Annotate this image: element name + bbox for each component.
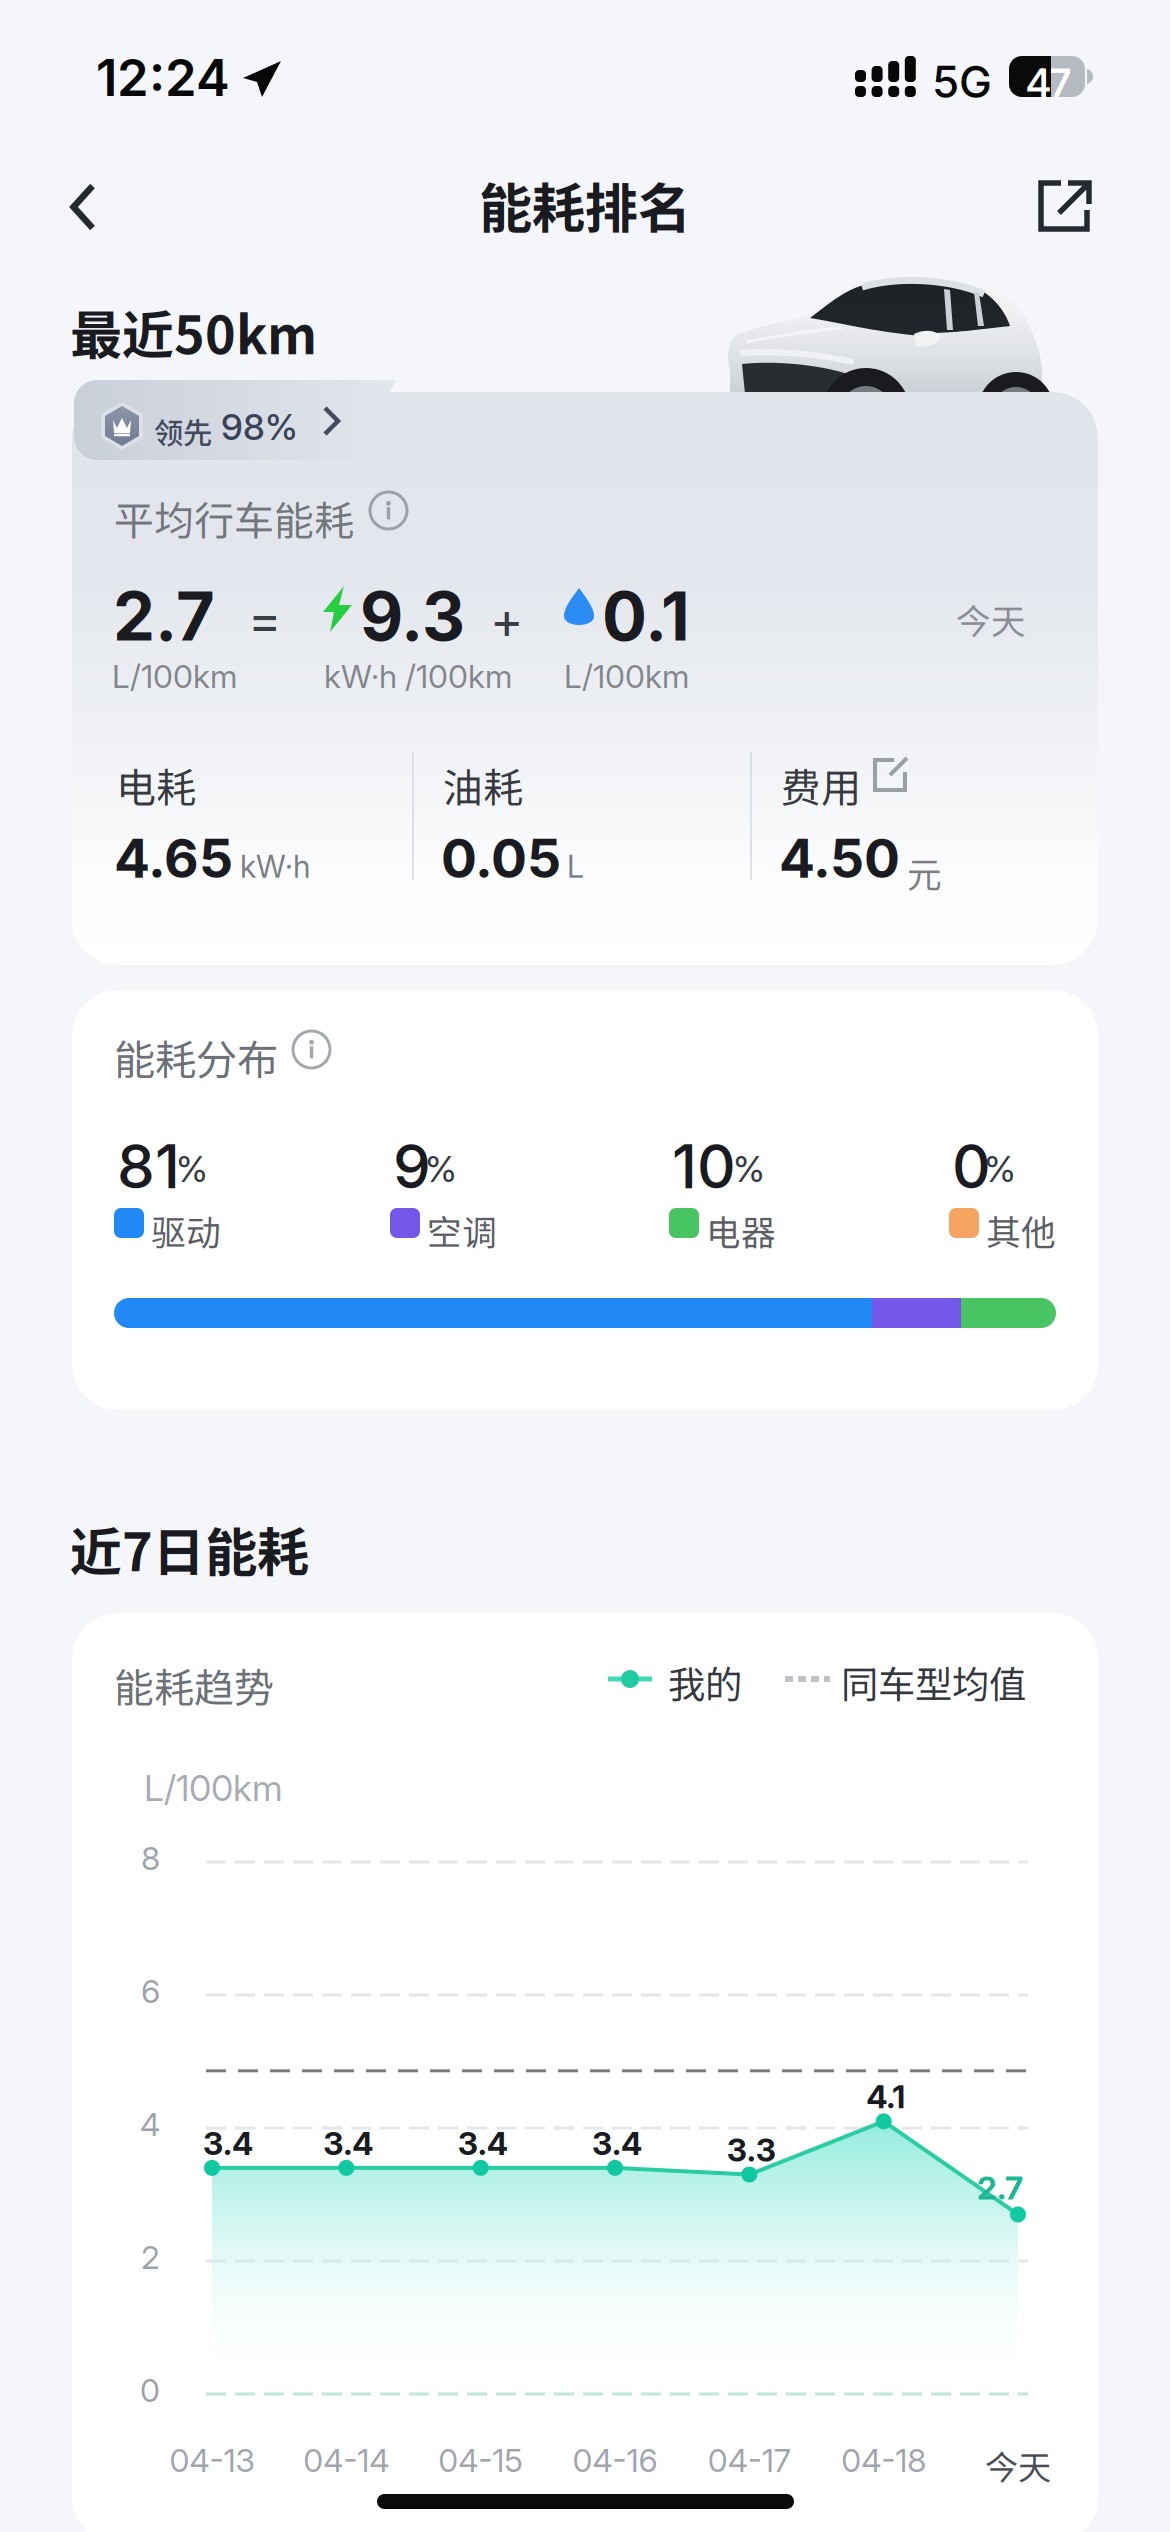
staticText: 04-14 xyxy=(303,2441,389,2480)
staticText: L xyxy=(567,848,584,885)
staticText: 同车型均值 xyxy=(841,1655,1026,1709)
staticText: kW·h xyxy=(240,848,310,885)
staticText: 9.3 xyxy=(360,576,465,657)
staticText: 3.3 xyxy=(727,2131,776,2169)
staticText: 最近50km xyxy=(70,294,317,369)
staticText: 3.4 xyxy=(458,2124,508,2163)
staticText: 04-16 xyxy=(572,2441,657,2480)
staticText: % xyxy=(733,1147,765,1191)
staticText: 3.4 xyxy=(592,2124,642,2163)
button[interactable]: Back xyxy=(28,152,138,262)
staticText: 2.7 xyxy=(113,576,215,657)
staticText: 47 xyxy=(1026,60,1071,107)
staticText: 领先 xyxy=(154,410,212,452)
staticText: 0 xyxy=(952,1130,991,1203)
staticText: 油耗 xyxy=(443,756,523,814)
staticText: 12:24 xyxy=(96,47,230,108)
staticText: L/100km xyxy=(564,657,689,696)
staticText: 0 xyxy=(140,2371,160,2410)
staticText: 9 xyxy=(393,1130,431,1203)
button[interactable]: Share xyxy=(1010,152,1120,262)
staticText: 10 xyxy=(672,1130,736,1203)
staticText: 能耗分布 xyxy=(114,1027,278,1087)
staticText: L/100km xyxy=(112,657,237,696)
staticText: 电耗 xyxy=(116,756,196,814)
staticText: 81 xyxy=(117,1130,180,1203)
staticText: % xyxy=(984,1147,1016,1191)
staticText: 驱动 xyxy=(151,1205,221,1255)
staticText: 能耗排名 xyxy=(479,166,691,243)
staticText: % xyxy=(425,1147,457,1191)
staticText: 空调 xyxy=(427,1205,497,1255)
staticText: 费用 xyxy=(781,756,861,814)
staticText: 能耗趋势 xyxy=(114,1656,274,1714)
staticText: 我的 xyxy=(668,1655,742,1709)
staticText: 0.05 xyxy=(441,826,561,890)
staticText: 其他 xyxy=(986,1205,1056,1255)
staticText: 0.1 xyxy=(602,576,690,657)
staticText: 元 xyxy=(907,847,942,897)
staticText: 近7日能耗 xyxy=(70,1511,309,1586)
staticText: 4.50 xyxy=(779,826,900,890)
staticText: 今天 xyxy=(985,2441,1051,2489)
staticText: 2 xyxy=(141,2238,160,2277)
staticText: 4 xyxy=(140,2105,160,2144)
staticText: 电器 xyxy=(706,1205,776,1255)
staticText: 4.65 xyxy=(114,826,233,890)
staticText: 平均行车能耗 xyxy=(114,489,354,547)
staticText: 8 xyxy=(141,1839,160,1878)
staticText: 3.4 xyxy=(203,2124,253,2163)
staticText: 6 xyxy=(141,1972,160,2011)
staticText: 3.4 xyxy=(323,2124,373,2163)
staticText: 04-17 xyxy=(708,2441,791,2480)
staticText: 今天 xyxy=(956,594,1026,644)
staticText: = xyxy=(248,589,282,650)
staticText: 04-13 xyxy=(169,2441,254,2480)
staticText: % xyxy=(176,1147,208,1191)
staticText: 98% xyxy=(221,405,298,449)
staticText: 4.1 xyxy=(866,2077,905,2116)
staticText: kW·h /100km xyxy=(324,657,512,696)
staticText: 04-18 xyxy=(841,2441,926,2480)
staticText: 2.7 xyxy=(977,2168,1023,2207)
staticText: 5G xyxy=(932,55,992,108)
staticText: + xyxy=(490,589,524,650)
button[interactable]: 领先 xyxy=(74,380,396,460)
staticText: L/100km xyxy=(144,1766,283,1810)
staticText: 04-15 xyxy=(438,2441,523,2480)
